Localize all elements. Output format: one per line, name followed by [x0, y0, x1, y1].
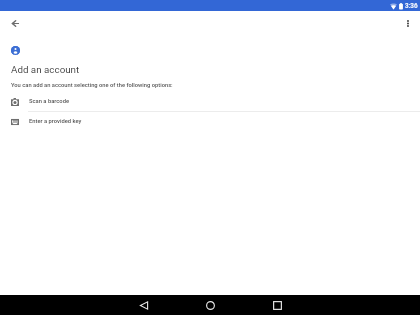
- staticText: You can add an account selecting one of …: [11, 82, 173, 89]
- staticText: Add an account: [11, 64, 80, 75]
- button[interactable]: More options: [401, 16, 415, 30]
- staticText: Scan a barcode: [29, 98, 70, 105]
- staticText: Enter a provided key: [29, 118, 82, 125]
- button[interactable]: Navigate up: [8, 16, 22, 30]
- button[interactable]: Enter a provided key: [0, 112, 420, 131]
- button[interactable]: Back: [133, 295, 155, 315]
- button[interactable]: Home: [199, 295, 221, 315]
- staticText: 3:36: [405, 2, 418, 10]
- button[interactable]: Scan a barcode: [0, 92, 420, 111]
- button[interactable]: Recent apps: [266, 295, 288, 315]
